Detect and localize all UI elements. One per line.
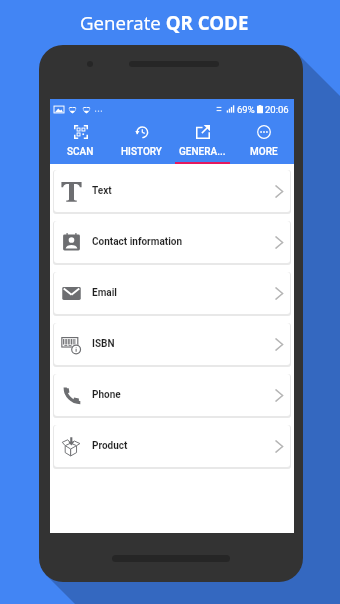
staticText: Generate QR CODE	[80, 10, 249, 35]
button[interactable]: HISTORY	[111, 116, 172, 164]
button[interactable]: MORE	[233, 116, 294, 164]
staticText: ISBN	[92, 338, 115, 350]
button[interactable]: Text	[54, 170, 290, 212]
staticText: Contact information	[92, 236, 183, 248]
button[interactable]: SCAN	[50, 116, 111, 164]
button[interactable]: ISBN	[54, 323, 290, 365]
staticText: SCAN	[67, 146, 94, 158]
button[interactable]: Phone	[54, 374, 290, 416]
staticText: Product	[92, 440, 128, 452]
staticText: MORE	[250, 146, 278, 158]
staticText: Text	[92, 185, 112, 197]
button[interactable]: Contact information	[54, 221, 290, 263]
staticText: Phone	[92, 389, 121, 401]
button[interactable]: GENERA...	[172, 116, 233, 164]
staticText: GENERA...	[179, 146, 226, 158]
button[interactable]: Product	[54, 425, 290, 467]
staticText: HISTORY	[121, 146, 162, 158]
staticText: Email	[92, 287, 117, 299]
staticText: 20:06	[265, 104, 289, 115]
button[interactable]: Email	[54, 272, 290, 314]
staticText: 69%	[237, 104, 255, 115]
